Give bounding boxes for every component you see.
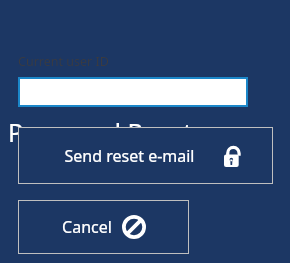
button[interactable]: Send reset e-mail bbox=[18, 127, 273, 184]
staticText: Password Reset bbox=[8, 115, 193, 149]
staticText: Cancel bbox=[62, 216, 112, 238]
staticText: Send reset e-mail bbox=[64, 145, 195, 167]
staticText: Current user ID bbox=[18, 53, 109, 70]
other: Cancel bbox=[122, 215, 146, 239]
button[interactable] bbox=[18, 77, 248, 107]
button[interactable]: Cancel bbox=[18, 200, 189, 254]
